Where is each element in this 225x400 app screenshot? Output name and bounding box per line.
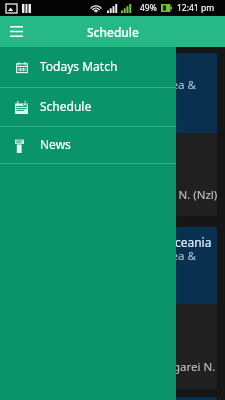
staticText: 49% (140, 2, 157, 14)
button[interactable]: Australia & Oceania (6, 227, 217, 389)
staticText: Papua New Guinea & (82, 248, 196, 264)
button[interactable]: Australia & Oceania (6, 397, 217, 400)
staticText: Australia & Oceania (101, 234, 212, 250)
staticText: Eagle Nest Park, Whangarei N. (Nzl) (26, 187, 217, 203)
button[interactable]: Todays Match (0, 47, 176, 87)
staticText: Papua New Guinea & (82, 77, 196, 93)
staticText: 12:41 pm (177, 2, 215, 14)
button[interactable]: News (0, 127, 176, 163)
staticText: Todays Match (40, 58, 118, 74)
button[interactable]: Open navigation drawer (0, 16, 32, 47)
staticText: Schedule (40, 98, 92, 114)
staticText: Eagle Nest Park, Whangarei N. (51, 359, 216, 375)
staticText: News (40, 136, 71, 152)
staticText: Schedule (87, 24, 139, 40)
button[interactable]: Schedule (0, 88, 176, 126)
button[interactable]: Papua New Guinea & (6, 53, 217, 216)
